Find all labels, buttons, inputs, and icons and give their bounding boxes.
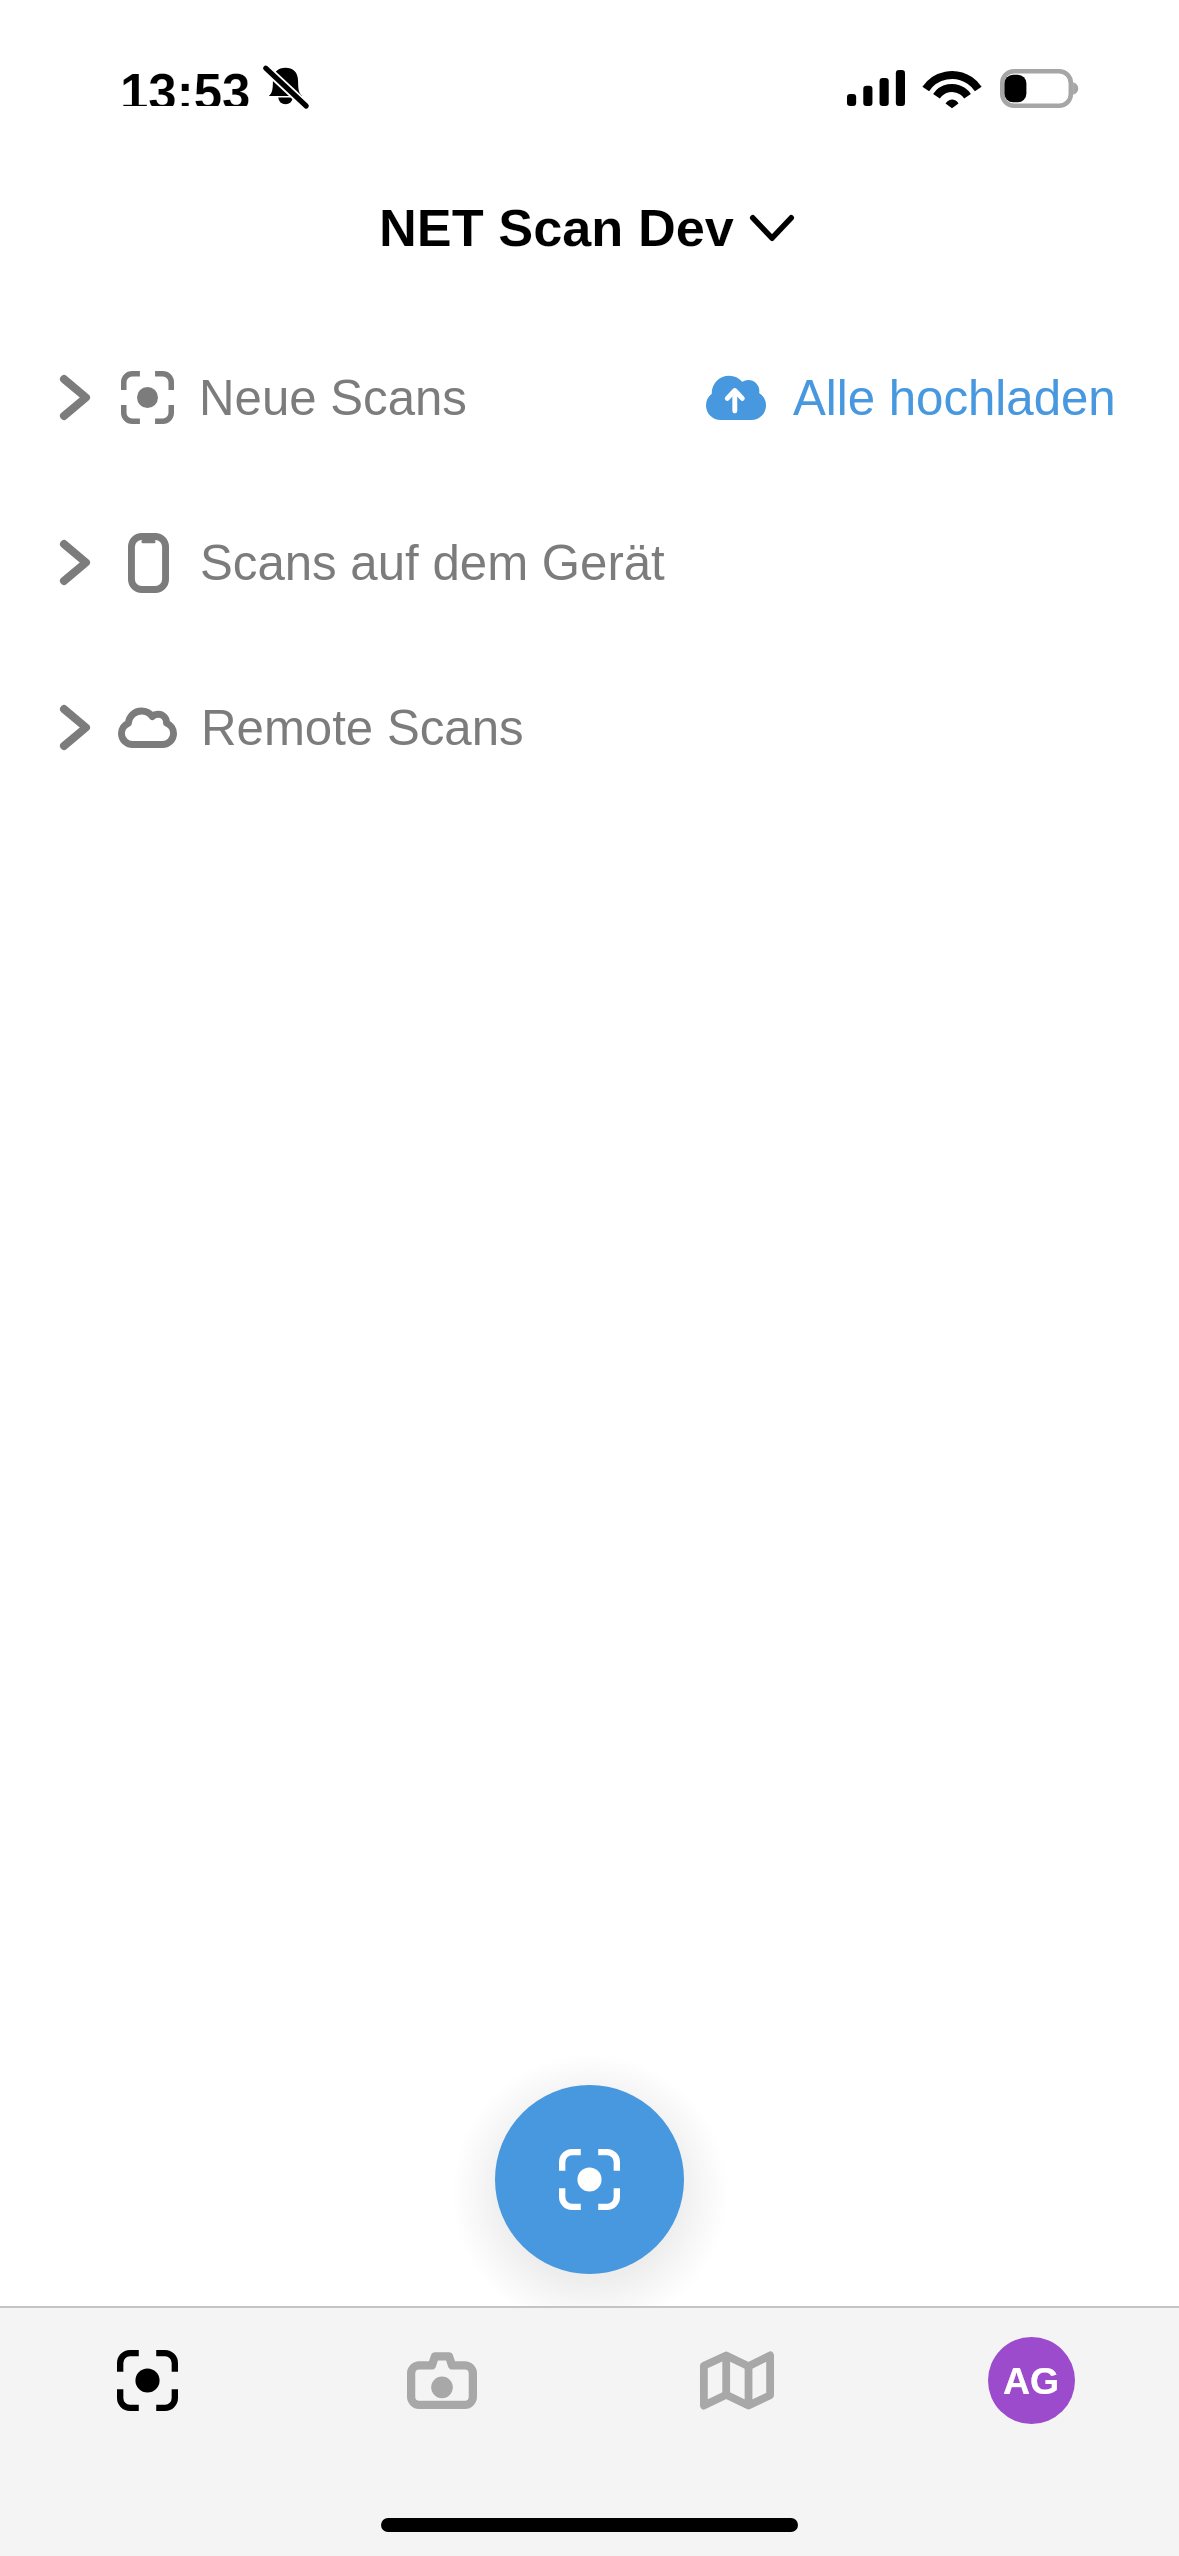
button[interactable]: Scans auf dem Gerät bbox=[0, 480, 1179, 645]
button[interactable]: Scans bbox=[0, 2308, 294, 2452]
button[interactable]: Neue Scans bbox=[0, 315, 1179, 480]
staticText: AG bbox=[1003, 2360, 1060, 2402]
staticText: Scans auf dem Gerät bbox=[200, 535, 665, 590]
button[interactable]: NET Scan Dev bbox=[0, 140, 1179, 315]
button[interactable]: Alle hochladen bbox=[706, 352, 1179, 443]
button[interactable]: Kamera bbox=[294, 2308, 589, 2452]
staticText: Neue Scans bbox=[199, 370, 467, 425]
staticText: Remote Scans bbox=[201, 700, 524, 755]
button[interactable]: Neuer Scan bbox=[495, 2085, 684, 2274]
button[interactable]: Karte bbox=[589, 2308, 884, 2452]
staticText: 13:53 bbox=[120, 64, 251, 106]
staticText: NET Scan Dev bbox=[379, 199, 734, 257]
button[interactable]: Remote Scans bbox=[0, 645, 1179, 810]
button[interactable]: Profil bbox=[884, 2308, 1179, 2452]
staticText: Alle hochladen bbox=[793, 370, 1116, 425]
